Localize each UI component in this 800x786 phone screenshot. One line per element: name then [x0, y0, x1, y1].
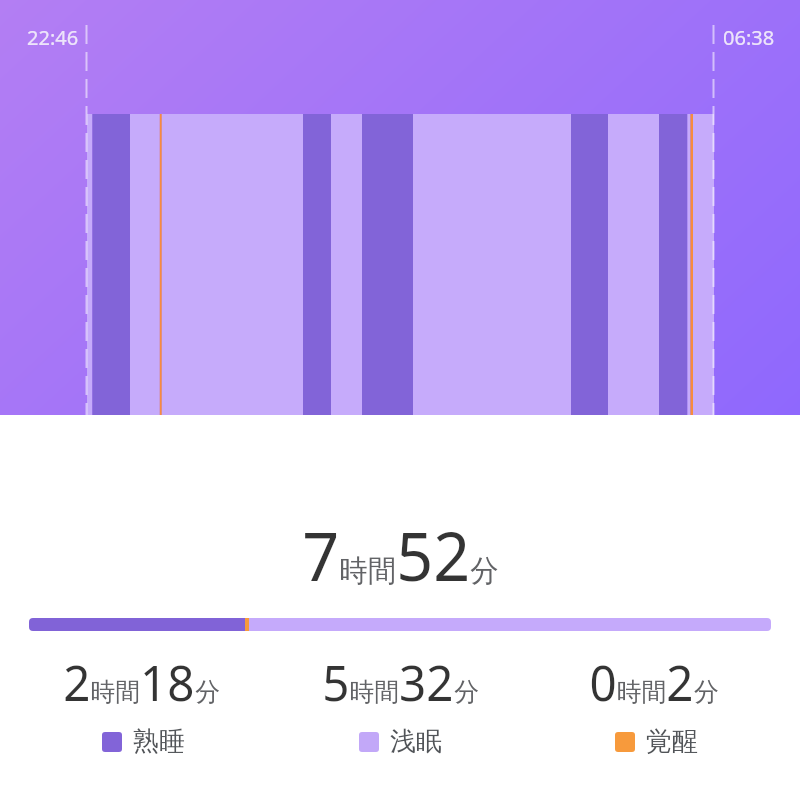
staticText: 分	[470, 552, 499, 590]
staticText: 覚醒	[646, 725, 698, 758]
staticText: 時間	[339, 552, 396, 590]
staticText: 0	[589, 648, 617, 716]
staticText: 時間	[350, 676, 399, 709]
staticText: 熟睡	[133, 725, 185, 758]
staticText: 浅眠	[390, 725, 442, 758]
staticText: 分	[694, 676, 719, 709]
staticText: 18	[140, 648, 195, 716]
staticText: 52	[396, 508, 470, 601]
staticText: 2	[666, 648, 694, 716]
staticText: 分	[454, 676, 479, 709]
staticText: 32	[399, 648, 454, 716]
staticText: 5	[322, 648, 350, 716]
staticText: 22:46	[27, 24, 79, 51]
staticText: 時間	[91, 676, 140, 709]
staticText: 06:38	[723, 24, 775, 51]
staticText: 分	[195, 676, 220, 709]
staticText: 2	[63, 648, 91, 716]
staticText: 時間	[617, 676, 666, 709]
staticText: 7	[302, 508, 339, 601]
